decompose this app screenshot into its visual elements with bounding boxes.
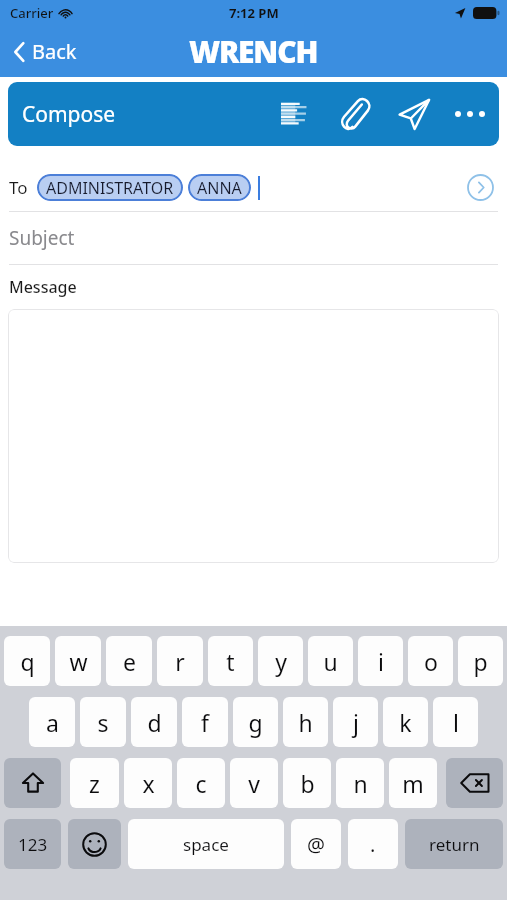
button[interactable]: Backspace [446, 758, 503, 808]
button[interactable]: n [336, 758, 384, 808]
staticText: o [424, 646, 438, 677]
button[interactable]: l [433, 697, 478, 747]
button[interactable]: Attach file [331, 91, 377, 137]
button[interactable]: More options [445, 89, 495, 139]
staticText: To [9, 176, 28, 199]
staticText: k [399, 707, 412, 738]
staticText: Carrier [10, 4, 54, 22]
button[interactable]: j [333, 697, 378, 747]
staticText: e [123, 646, 136, 677]
button[interactable]: @ [291, 819, 341, 869]
staticText: g [248, 707, 263, 738]
staticText: ADMINISTRATOR [46, 177, 174, 199]
staticText: z [89, 768, 100, 799]
staticText: a [46, 707, 59, 738]
button[interactable]: z [70, 758, 119, 808]
staticText: b [300, 768, 315, 799]
button[interactable]: k [383, 697, 428, 747]
button[interactable]: h [283, 697, 328, 747]
button[interactable]: Send [391, 91, 437, 137]
staticText: . [370, 831, 376, 858]
button[interactable]: Emoji [68, 819, 121, 869]
staticText: WRENCH [189, 31, 318, 72]
button[interactable]: x [124, 758, 172, 808]
staticText: space [183, 833, 229, 856]
button[interactable]: y [258, 636, 303, 686]
button[interactable]: m [389, 758, 437, 808]
button[interactable]: Shift [4, 758, 61, 808]
staticText: 7:12 PM [229, 4, 279, 22]
staticText: m [402, 768, 424, 799]
button[interactable]: i [358, 636, 403, 686]
staticText: Subject [9, 225, 75, 251]
staticText: h [298, 707, 313, 738]
staticText: 123 [18, 833, 48, 856]
button[interactable]: u [308, 636, 353, 686]
button[interactable]: e [106, 636, 152, 686]
button[interactable]: 123 [4, 819, 61, 869]
button[interactable]: Format [271, 91, 317, 137]
button[interactable]: q [4, 636, 50, 686]
button[interactable]: f [182, 697, 228, 747]
button[interactable]: v [230, 758, 278, 808]
staticText: w [69, 646, 88, 677]
button[interactable]: o [408, 636, 453, 686]
button[interactable]: g [233, 697, 278, 747]
staticText: Compose [22, 100, 116, 129]
staticText: ANNA [197, 177, 242, 199]
button[interactable]: return [405, 819, 503, 869]
button[interactable]: . [348, 819, 398, 869]
button[interactable]: space [128, 819, 284, 869]
button[interactable]: w [55, 636, 101, 686]
staticText: l [453, 707, 459, 738]
button[interactable]: s [80, 697, 126, 747]
staticText: u [323, 646, 338, 677]
button[interactable]: t [208, 636, 253, 686]
button[interactable]: r [157, 636, 203, 686]
button[interactable]: b [283, 758, 331, 808]
staticText: Message [9, 276, 77, 298]
staticText: r [175, 646, 185, 677]
staticText: @ [307, 831, 325, 858]
button[interactable]: Subject [0, 212, 507, 264]
staticText: y [275, 646, 287, 677]
staticText: p [473, 646, 488, 677]
staticText: v [248, 768, 260, 799]
staticText: j [353, 707, 359, 738]
staticText: c [195, 768, 207, 799]
button[interactable]: p [458, 636, 503, 686]
staticText: q [20, 646, 35, 677]
button[interactable]: ADMINISTRATOR [37, 174, 183, 201]
staticText: return [429, 833, 480, 856]
staticText: f [201, 707, 209, 738]
button[interactable]: a [29, 697, 75, 747]
staticText: Back [32, 38, 77, 65]
staticText: t [226, 646, 235, 677]
staticText: i [378, 646, 384, 677]
staticText: n [353, 768, 368, 799]
button[interactable]: c [177, 758, 225, 808]
button[interactable]: Add recipient [463, 170, 497, 204]
button[interactable]: d [131, 697, 177, 747]
button[interactable]: Back [0, 32, 91, 71]
button[interactable]: ANNA [188, 174, 251, 201]
staticText: x [142, 768, 155, 799]
staticText: s [97, 707, 109, 738]
staticText: d [147, 707, 162, 738]
